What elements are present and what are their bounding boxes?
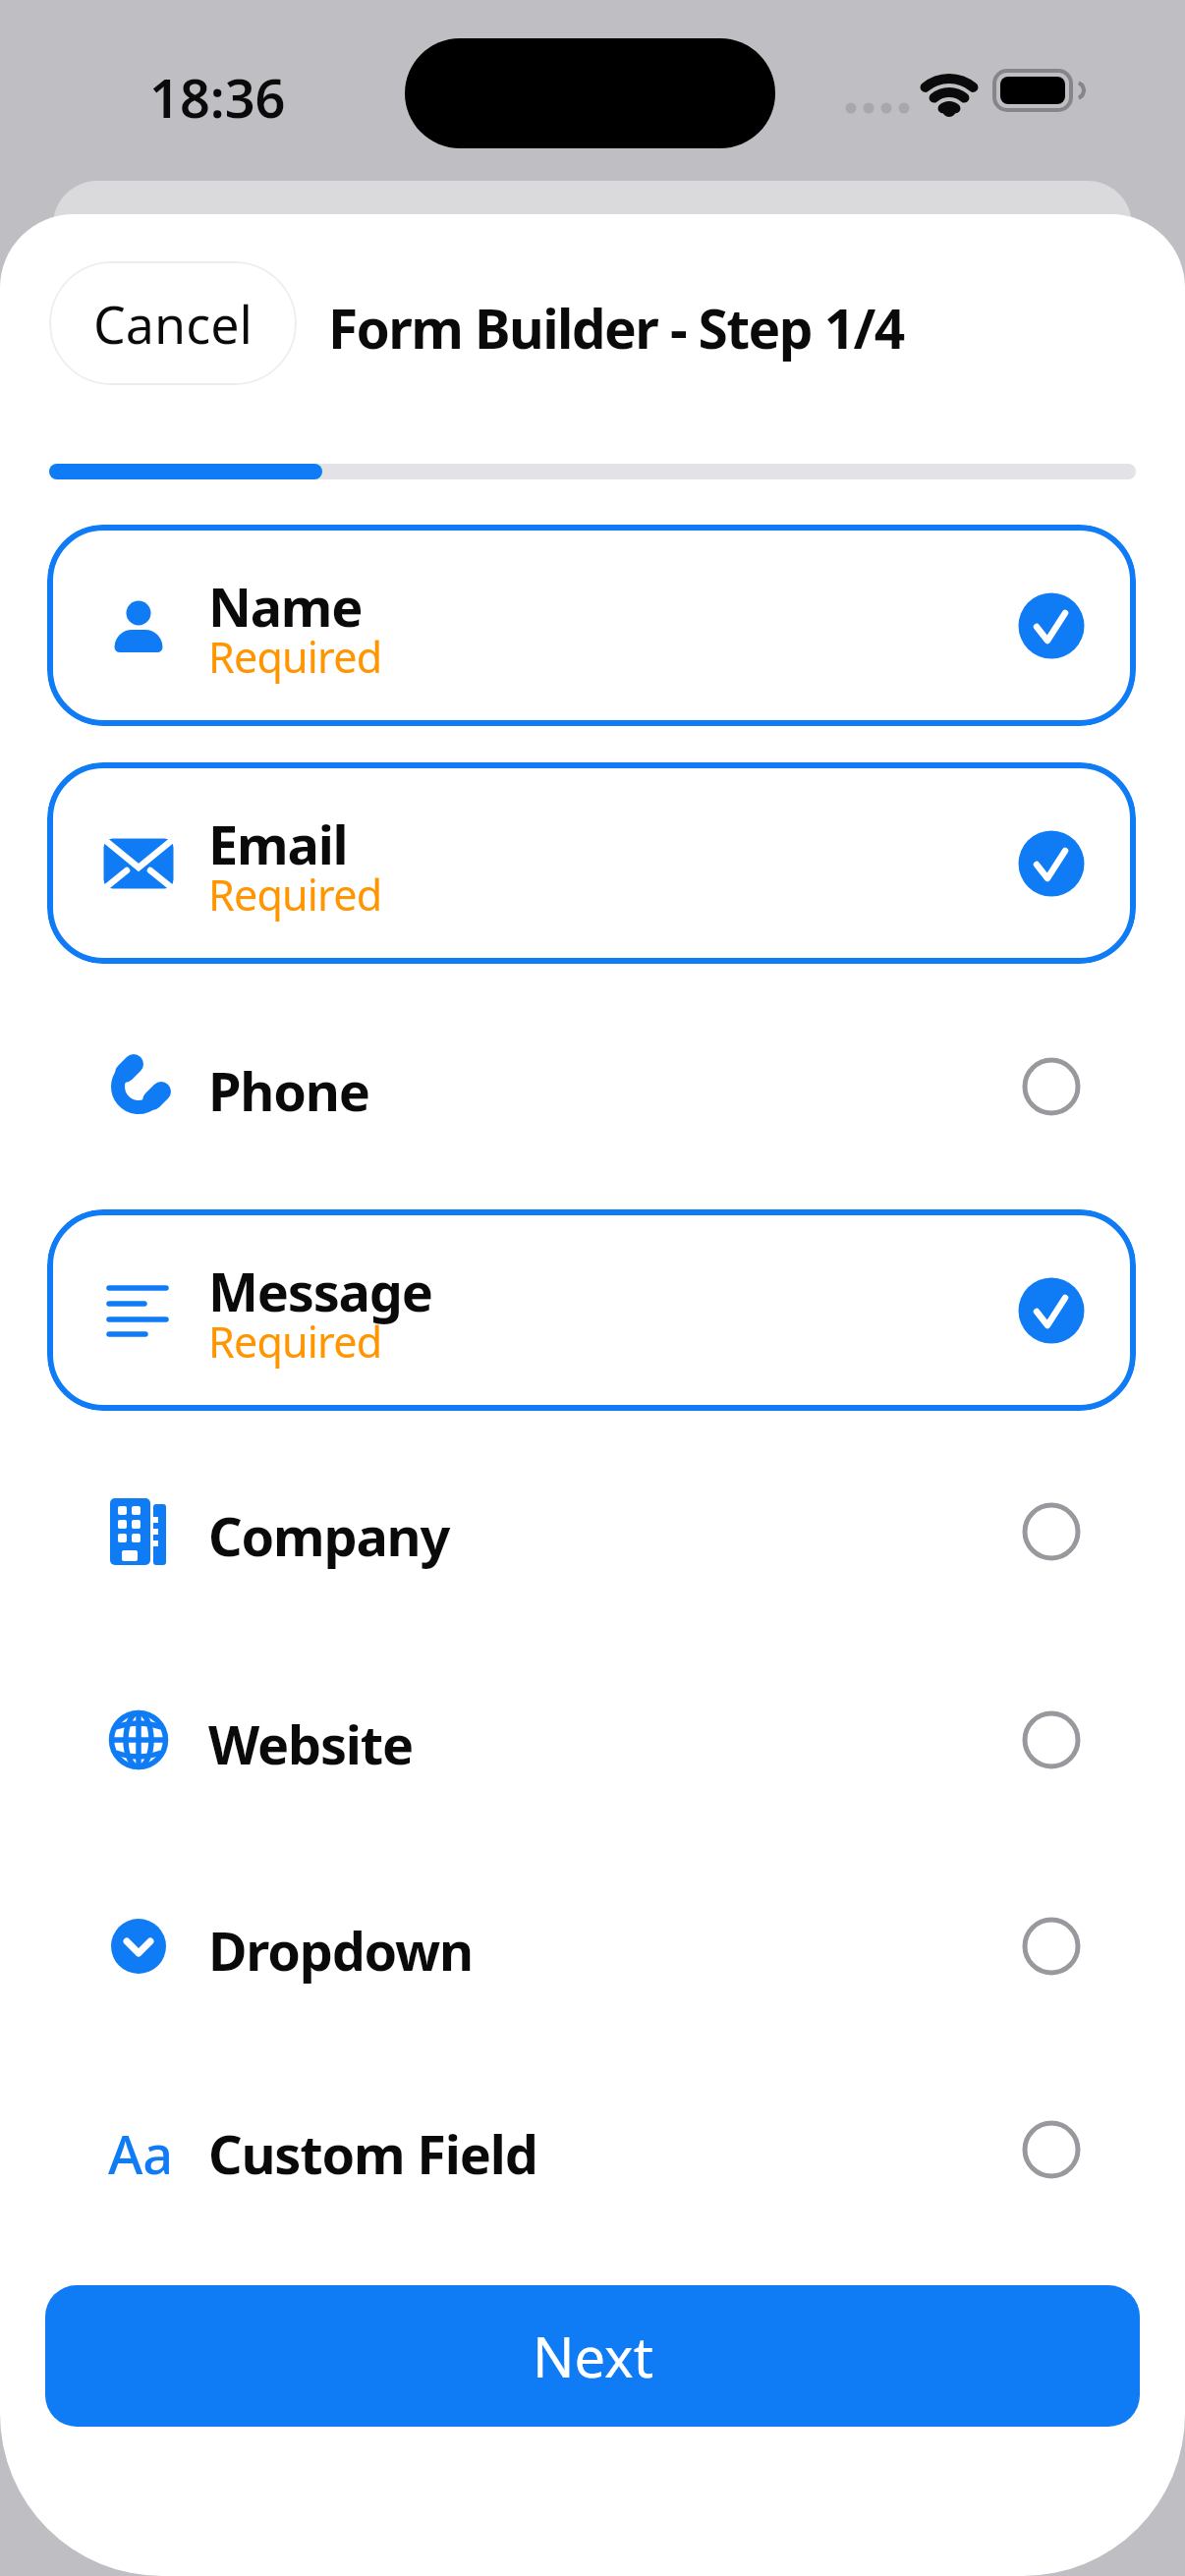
button[interactable]: Message — [47, 1209, 1136, 1411]
button[interactable]: Company — [47, 1448, 1136, 1615]
staticText: Dropdown — [208, 1914, 473, 1987]
staticText: 18:36 — [149, 61, 286, 134]
button[interactable]: Email — [47, 762, 1136, 964]
button[interactable]: Name — [47, 525, 1136, 726]
staticText: Required — [208, 866, 382, 924]
button[interactable]: Next — [45, 2285, 1140, 2427]
button[interactable]: Phone — [47, 1003, 1136, 1170]
staticText: Required — [208, 628, 382, 686]
button[interactable]: Dropdown — [47, 1863, 1136, 2030]
staticText: Next — [533, 2319, 653, 2393]
staticText: Message — [208, 1255, 432, 1327]
staticText: Aa — [108, 2117, 174, 2190]
staticText: Email — [208, 808, 348, 880]
staticText: Form Builder - Step 1/4 — [328, 291, 904, 364]
staticText: Phone — [208, 1054, 369, 1127]
staticText: Name — [208, 570, 363, 643]
button[interactable]: Aa — [47, 2066, 1136, 2233]
staticText: Required — [208, 1313, 382, 1371]
button[interactable]: Website — [47, 1656, 1136, 1823]
button[interactable]: Cancel — [49, 261, 297, 385]
staticText: Custom Field — [208, 2117, 537, 2190]
staticText: Company — [208, 1499, 450, 1572]
staticText: Website — [208, 1708, 414, 1780]
staticText: Cancel — [93, 289, 253, 359]
